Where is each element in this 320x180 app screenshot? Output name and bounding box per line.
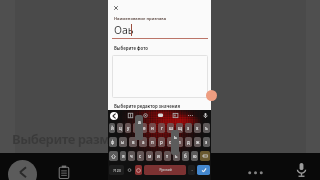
staticText: ь — [174, 134, 177, 141]
button[interactable]: . — [188, 165, 195, 175]
button[interactable]: г — [158, 123, 165, 133]
button[interactable]: Clipboard — [57, 165, 71, 179]
button[interactable]: Choose photo — [112, 55, 208, 98]
button[interactable]: е — [141, 123, 147, 133]
button[interactable]: р — [158, 137, 165, 147]
button[interactable]: Close — [111, 3, 121, 13]
button[interactable]: с — [137, 151, 144, 161]
button[interactable]: ж — [194, 137, 201, 147]
staticText: Выберите редактор значения — [114, 103, 181, 109]
button[interactable]: л — [176, 137, 183, 147]
staticText: х — [196, 125, 199, 131]
button[interactable]: Backspace — [200, 151, 210, 161]
staticText: г — [161, 125, 163, 131]
staticText: е — [143, 125, 146, 131]
staticText: б — [184, 153, 187, 159]
button[interactable]: з — [185, 123, 192, 133]
button[interactable]: Recent apps — [247, 164, 264, 180]
staticText: ь — [175, 153, 178, 159]
button[interactable]: м — [146, 151, 153, 161]
staticText: у — [127, 125, 130, 131]
staticText: й — [111, 125, 114, 131]
staticText: с — [139, 153, 142, 159]
button[interactable]: Keyboard tool — [157, 112, 164, 119]
button[interactable]: ю — [191, 151, 198, 161]
button[interactable]: Add — [206, 90, 217, 101]
button[interactable]: щ — [176, 123, 183, 133]
button[interactable]: Shift — [109, 151, 118, 161]
button[interactable]: о — [167, 137, 174, 147]
button[interactable]: й — [109, 123, 115, 133]
staticText: ш — [169, 125, 173, 131]
staticText: э — [205, 139, 208, 145]
button[interactable]: и — [155, 151, 162, 161]
button[interactable]: Keyboard tool — [187, 112, 194, 119]
button[interactable]: п — [149, 137, 156, 147]
staticText: Выберите фото — [114, 45, 148, 51]
button[interactable]: ?123 — [109, 165, 124, 175]
staticText: ?123 — [113, 168, 121, 173]
staticText: т — [166, 153, 169, 159]
staticText: ч — [130, 153, 133, 159]
staticText: о — [169, 139, 172, 145]
staticText: Оаь — [114, 23, 134, 37]
button[interactable]: б — [182, 151, 189, 161]
button[interactable]: Enter — [197, 165, 210, 175]
staticText: и — [157, 153, 160, 159]
button[interactable]: Voice input — [202, 112, 209, 119]
button[interactable]: д — [185, 137, 192, 147]
button[interactable]: н — [149, 123, 156, 133]
button[interactable]: ф — [109, 137, 117, 147]
staticText: Наименование признака — [114, 16, 167, 21]
button[interactable]: Google — [110, 112, 118, 120]
button[interactable]: Settings — [126, 165, 133, 175]
button[interactable]: т — [164, 151, 171, 161]
button[interactable]: а — [139, 137, 147, 147]
button[interactable]: Keyboard tool — [127, 112, 134, 119]
button[interactable]: Microphone — [294, 162, 309, 177]
staticText: ю — [193, 153, 197, 159]
staticText: н — [151, 125, 154, 131]
staticText: ф — [111, 139, 115, 145]
button[interactable]: я — [120, 151, 126, 161]
staticText: ж — [196, 139, 200, 145]
staticText: р — [160, 139, 163, 145]
button[interactable]: Keyboard tool — [142, 112, 149, 119]
staticText: л — [178, 139, 181, 145]
staticText: ъ — [205, 125, 208, 131]
button[interactable]: ч — [128, 151, 135, 161]
staticText: д — [187, 139, 190, 145]
staticText: а — [142, 139, 145, 145]
button[interactable]: ш — [167, 123, 174, 133]
staticText: ц — [119, 125, 122, 131]
staticText: п — [151, 139, 154, 145]
staticText: я — [122, 153, 125, 159]
button[interactable]: ы — [119, 137, 127, 147]
staticText: Русский — [159, 168, 172, 172]
staticText: а — [138, 119, 141, 126]
staticText: в — [132, 139, 135, 145]
staticText: щ — [178, 125, 182, 131]
staticText: Выберите размер — [12, 130, 125, 148]
button[interactable]: ь — [173, 151, 180, 161]
button[interactable]: в — [129, 137, 137, 147]
button[interactable]: э — [203, 137, 210, 147]
button[interactable]: х — [194, 123, 201, 133]
button[interactable]: ц — [117, 123, 123, 133]
button[interactable]: Keyboard tool — [172, 112, 179, 119]
button[interactable]: к — [133, 123, 139, 133]
staticText: м — [148, 153, 152, 159]
staticText: з — [187, 125, 190, 131]
button[interactable]: ъ — [203, 123, 210, 133]
button[interactable]: у — [125, 123, 131, 133]
staticText: ы — [121, 139, 125, 145]
button[interactable]: Emoji — [135, 165, 142, 175]
button[interactable]: Русский — [144, 165, 186, 175]
button[interactable]: Back — [8, 160, 37, 180]
staticText: . — [191, 167, 193, 173]
